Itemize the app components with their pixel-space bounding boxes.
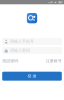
button[interactable]: 请输入密码 xyxy=(0,47,64,54)
button[interactable]: 找回密码 xyxy=(2,58,18,63)
staticText: 注册账号 xyxy=(46,58,62,63)
button[interactable]: 注册账号 xyxy=(46,58,62,63)
staticText: 登 录 xyxy=(27,74,36,79)
button[interactable]: 登 录 xyxy=(0,72,64,81)
staticText: 找回密码 xyxy=(2,58,18,63)
button[interactable]: 请输入手机号 xyxy=(0,38,64,45)
staticText: 请输入密码 xyxy=(10,48,30,53)
staticText: 请输入手机号 xyxy=(10,39,34,44)
